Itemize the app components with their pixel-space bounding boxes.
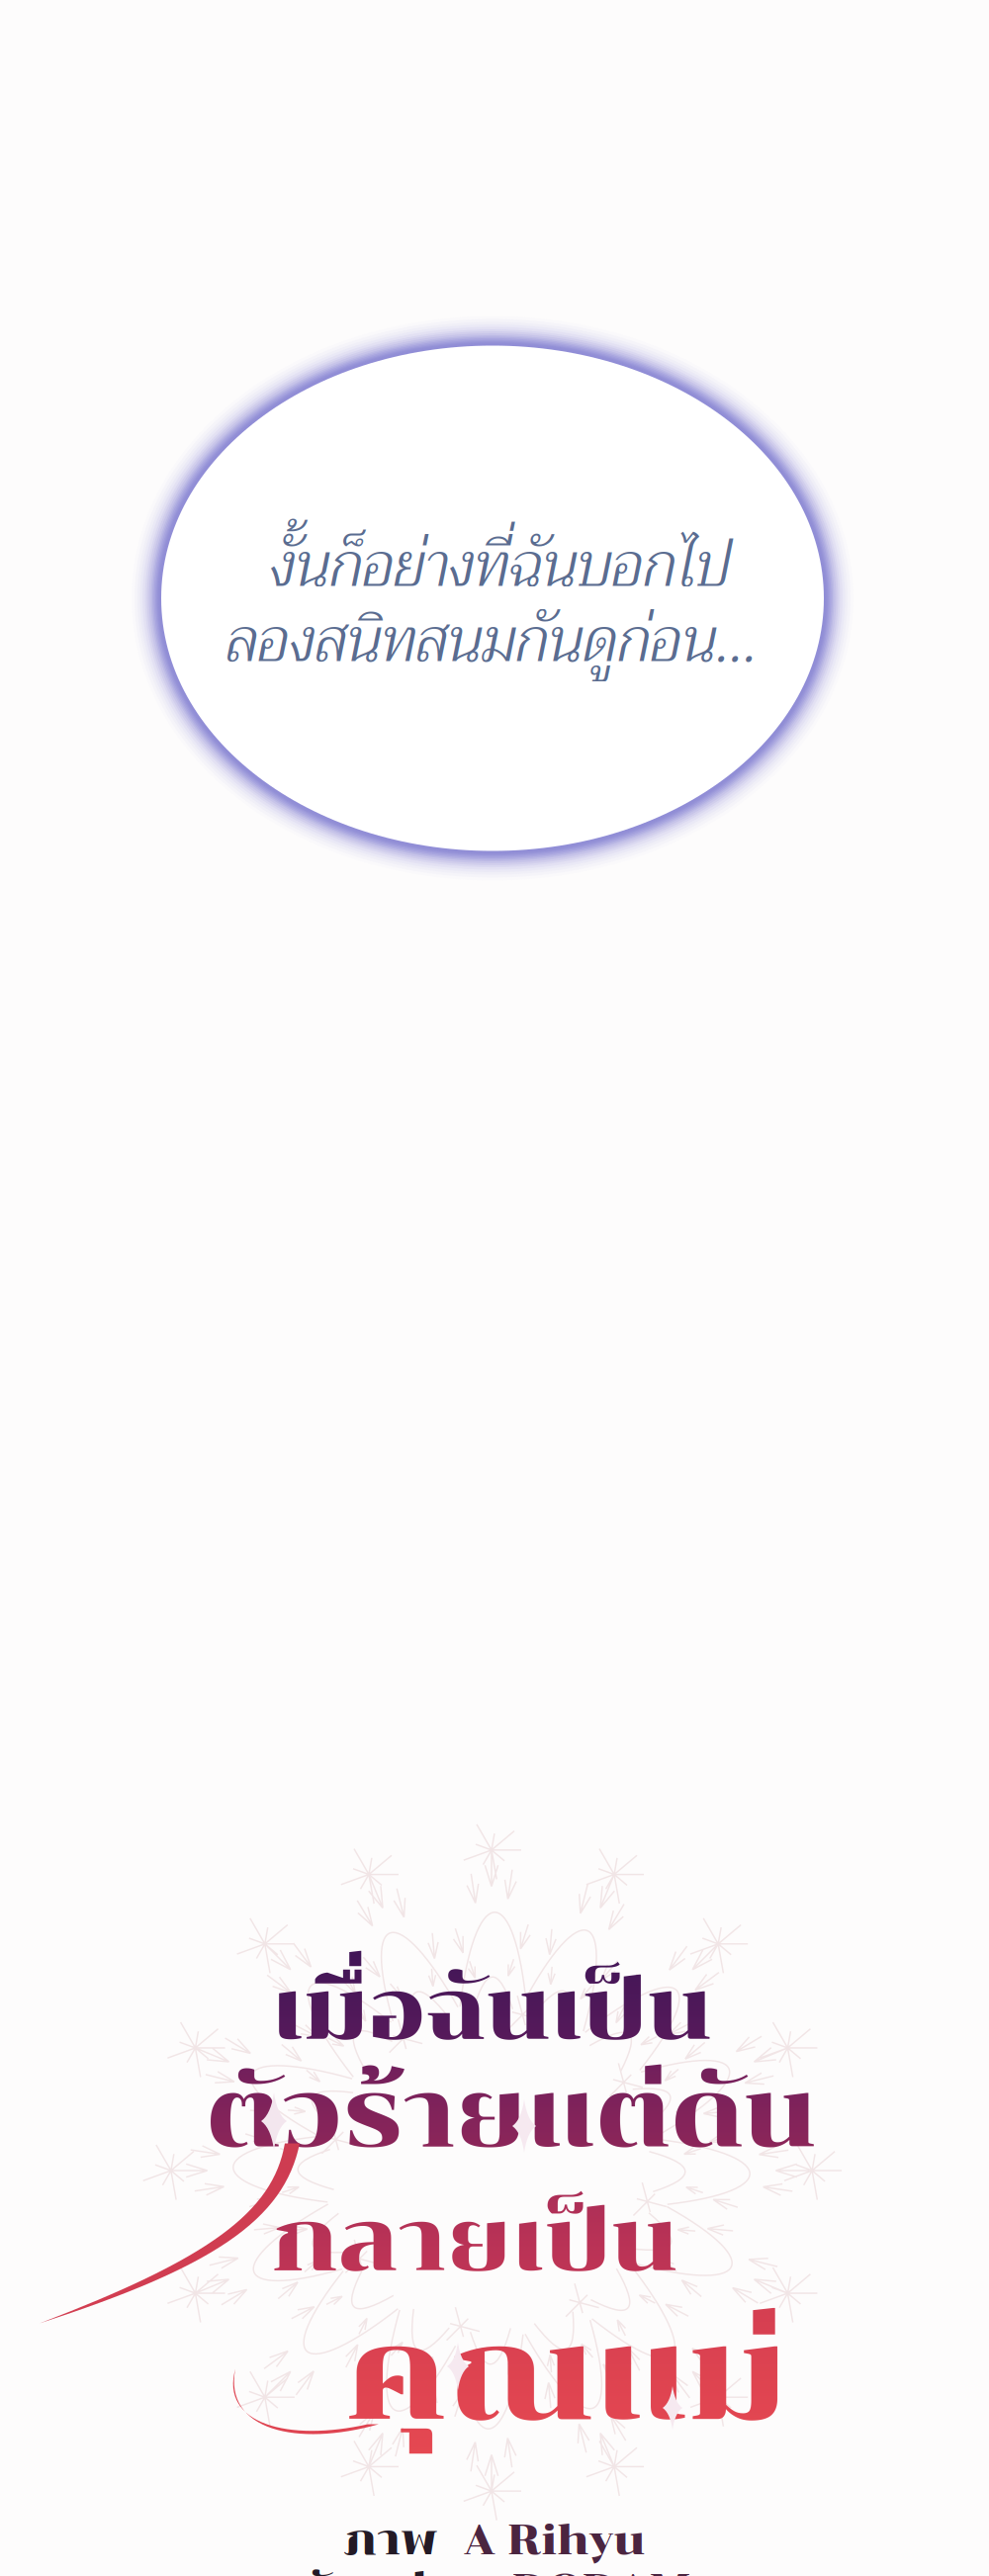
- staticText: DODAM: [512, 2564, 690, 2576]
- staticText: A Rihyu: [463, 2514, 645, 2565]
- staticText: ดัดแปลง: [299, 2564, 487, 2576]
- staticText: ภาพ: [344, 2514, 438, 2565]
- staticText: ลองสนิทสนมกันดูก่อน...: [225, 588, 758, 693]
- staticText: งั้นก็อย่างที่ฉันบอกไป: [269, 513, 730, 618]
